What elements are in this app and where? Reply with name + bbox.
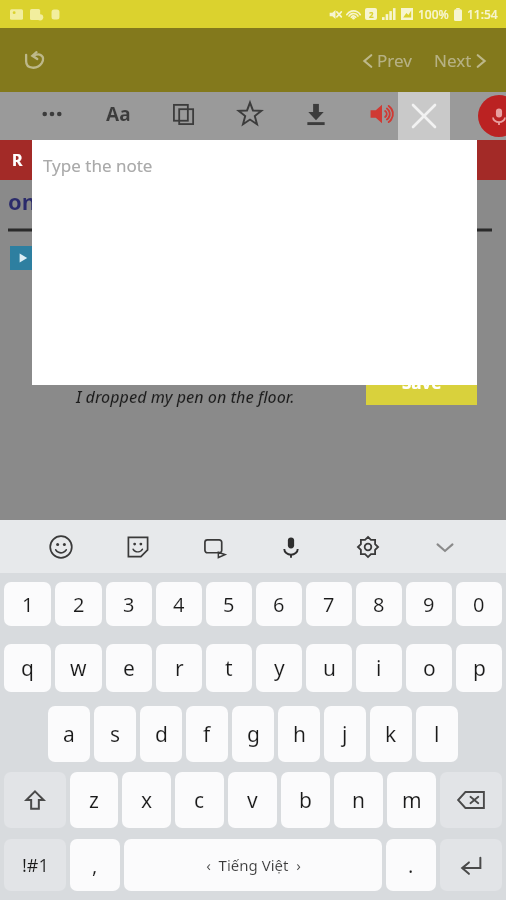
staticText: t — [225, 654, 233, 683]
button[interactable]: k — [370, 706, 412, 762]
button[interactable]: Shift — [4, 772, 66, 828]
button[interactable]: g — [232, 706, 274, 762]
staticText: on — [8, 186, 37, 216]
button[interactable]: w — [55, 644, 102, 692]
button[interactable] — [10, 246, 36, 270]
button[interactable]: 7 — [306, 582, 352, 626]
button[interactable]: Read aloud — [360, 92, 404, 136]
button[interactable]: Emoji — [39, 525, 83, 569]
button[interactable]: 3 — [106, 582, 152, 626]
button[interactable]: Voice input — [269, 525, 313, 569]
button[interactable]: j — [324, 706, 366, 762]
button[interactable]: Hide keyboard — [423, 525, 467, 569]
button[interactable]: t — [206, 644, 252, 692]
button[interactable]: 8 — [356, 582, 402, 626]
button[interactable]: u — [306, 644, 352, 692]
button[interactable]: More options — [30, 92, 74, 136]
staticText: b — [299, 786, 312, 815]
button[interactable]: q — [4, 644, 51, 692]
button[interactable]: Font size — [96, 92, 140, 136]
staticText: 1 — [22, 591, 34, 618]
staticText: o — [423, 654, 436, 683]
button[interactable]: 2 — [55, 582, 102, 626]
button[interactable]: s — [94, 706, 136, 762]
button[interactable]: 1 — [4, 582, 51, 626]
button[interactable]: , — [70, 839, 120, 891]
staticText: 3 — [123, 591, 135, 618]
staticText: 6 — [273, 591, 285, 618]
button[interactable]: 0 — [456, 582, 502, 626]
button[interactable]: m — [387, 772, 436, 828]
staticText: I dropped my pen on the floor. — [76, 386, 295, 408]
staticText: 2 — [369, 9, 374, 20]
staticText: Aa — [106, 101, 131, 127]
button[interactable]: 9 — [406, 582, 452, 626]
button[interactable]: c — [175, 772, 224, 828]
button[interactable]: r — [156, 644, 202, 692]
staticText: R — [12, 149, 23, 171]
button[interactable]: 5 — [206, 582, 252, 626]
button[interactable]: ‹ Tiếng Việt › — [124, 839, 382, 891]
staticText: s — [110, 720, 121, 749]
staticText: l — [434, 720, 440, 749]
button[interactable]: b — [281, 772, 330, 828]
button[interactable]: Save — [366, 360, 477, 405]
staticText: 4 — [173, 591, 185, 618]
button[interactable]: h — [278, 706, 320, 762]
button[interactable]: a — [48, 706, 90, 762]
staticText: n — [352, 786, 365, 815]
button[interactable]: p — [456, 644, 502, 692]
staticText: 0 — [473, 591, 485, 618]
staticText: !#1 — [22, 853, 49, 878]
staticText: h — [293, 720, 306, 749]
button[interactable]: Copy — [162, 92, 206, 136]
staticText: 9 — [423, 591, 435, 618]
button[interactable]: GIF — [193, 525, 237, 569]
button[interactable]: d — [140, 706, 182, 762]
button[interactable]: !#1 — [4, 839, 66, 891]
staticText: k — [385, 720, 397, 749]
staticText: 5 — [223, 591, 235, 618]
staticText: z — [89, 786, 99, 815]
button[interactable]: 6 — [256, 582, 302, 626]
staticText: 7 — [323, 591, 335, 618]
button[interactable]: i — [356, 644, 402, 692]
button[interactable]: Next — [428, 41, 496, 80]
staticText: . — [408, 852, 414, 879]
button[interactable]: Backspace — [440, 772, 502, 828]
button[interactable]: Bookmark — [228, 92, 272, 136]
staticText: 2 — [73, 591, 85, 618]
staticText: c — [194, 786, 205, 815]
button[interactable]: l — [416, 706, 458, 762]
button[interactable]: Enter — [440, 839, 502, 891]
staticText: Prev — [377, 49, 412, 72]
button[interactable]: z — [70, 772, 118, 828]
button[interactable]: . — [386, 839, 436, 891]
staticText: 100% — [418, 6, 449, 22]
button[interactable]: Download — [294, 92, 338, 136]
staticText: d — [155, 720, 168, 749]
button[interactable]: o — [406, 644, 452, 692]
button[interactable]: v — [228, 772, 277, 828]
button[interactable]: Prev — [353, 41, 418, 80]
staticText: 11:54 — [467, 6, 498, 22]
button[interactable]: x — [122, 772, 171, 828]
button[interactable]: 4 — [156, 582, 202, 626]
button[interactable]: Voice — [478, 95, 506, 137]
button[interactable]: y — [256, 644, 302, 692]
button[interactable]: Close — [398, 92, 450, 140]
staticText: x — [141, 786, 153, 815]
button[interactable]: e — [106, 644, 152, 692]
staticText: j — [342, 720, 348, 749]
button[interactable]: Stickers — [116, 525, 160, 569]
button[interactable]: Back — [14, 38, 58, 82]
staticText: ‹ Tiếng Việt › — [206, 855, 301, 875]
staticText: y — [274, 654, 285, 683]
button[interactable]: n — [334, 772, 383, 828]
staticText: m — [402, 786, 422, 815]
button[interactable]: Type the note — [32, 140, 477, 385]
button[interactable]: f — [186, 706, 228, 762]
staticText: v — [247, 786, 258, 815]
staticText: q — [21, 654, 34, 683]
button[interactable]: Settings — [346, 525, 390, 569]
